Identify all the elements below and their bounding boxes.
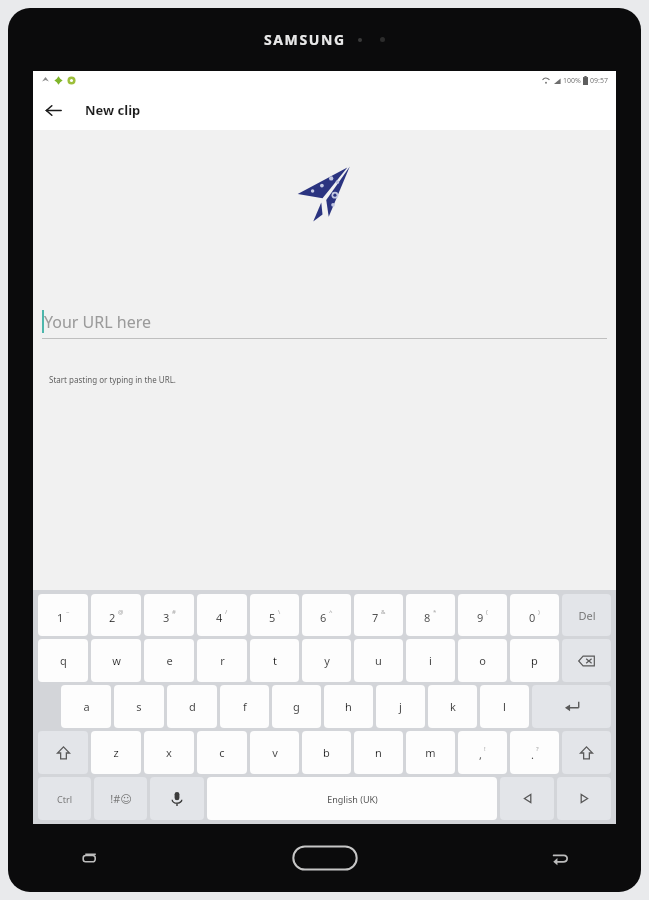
staticText: r [220,653,225,668]
button[interactable]: Recent apps [68,837,110,879]
staticText: ! [484,745,486,753]
button[interactable]: k [428,685,477,728]
button[interactable]: x [144,731,194,774]
button[interactable]: t [250,639,299,682]
staticText: ( [486,608,488,616]
button[interactable]: 5 [250,594,299,636]
button[interactable]: 9 [458,594,507,636]
staticText: # [172,608,176,616]
staticText: g [293,699,300,714]
staticText: w [112,653,121,668]
button[interactable]: . [510,731,559,774]
button[interactable]: 4 [197,594,247,636]
button[interactable]: a [61,685,111,728]
staticText: !#☺ [110,791,132,806]
staticText: l [503,699,506,714]
staticText: Start pasting or typing in the URL. [49,374,176,385]
staticText: English (UK) [327,793,378,805]
button[interactable]: 8 [406,594,455,636]
staticText: 4 [216,610,223,625]
button[interactable]: shift [562,731,611,774]
button[interactable]: l [480,685,529,728]
staticText: v [272,745,278,760]
button[interactable]: !#☺ [94,777,147,820]
button[interactable]: r [197,639,247,682]
button[interactable]: enter [532,685,611,728]
staticText: z [113,745,119,760]
button[interactable]: Home [289,841,361,875]
button[interactable]: h [324,685,373,728]
button[interactable]: 7 [354,594,403,636]
button[interactable]: n [354,731,403,774]
staticText: a [83,699,90,714]
staticText: ~ [66,608,70,616]
button[interactable]: q [38,639,88,682]
staticText: e [166,653,173,668]
button[interactable]: 3 [144,594,194,636]
staticText: 2 [109,610,116,625]
staticText: & [381,608,386,616]
button[interactable]: right [557,777,611,820]
button[interactable]: g [272,685,321,728]
button[interactable]: i [406,639,455,682]
button[interactable]: u [354,639,403,682]
button[interactable]: Back [33,90,73,130]
staticText: * [433,608,437,616]
staticText: 5 [269,610,276,625]
button[interactable]: f [220,685,269,728]
button[interactable]: j [376,685,425,728]
staticText: q [60,653,67,668]
staticText: 0 [529,610,536,625]
button[interactable]: 6 [302,594,351,636]
button[interactable]: 2 [91,594,141,636]
staticText: y [324,653,330,668]
button[interactable]: y [302,639,351,682]
staticText: / [225,608,228,616]
button[interactable]: , [458,731,507,774]
staticText: Del [578,608,596,623]
staticText: b [323,745,330,760]
button[interactable]: m [406,731,455,774]
staticText: Your URL here [44,311,152,333]
staticText: x [166,745,172,760]
staticText: 6 [320,610,327,625]
button[interactable]: 1 [38,594,88,636]
staticText: d [189,699,196,714]
staticText: 7 [372,610,379,625]
staticText: 09:57 [590,76,608,86]
staticText: 3 [163,610,170,625]
staticText: p [531,653,538,668]
staticText: c [219,745,225,760]
button[interactable]: z [91,731,141,774]
button[interactable]: w [91,639,141,682]
button[interactable]: v [250,731,299,774]
button[interactable]: e [144,639,194,682]
staticText: ) [538,608,540,616]
staticText: New clip [85,101,141,119]
button[interactable]: p [510,639,559,682]
button[interactable]: o [458,639,507,682]
button[interactable]: Back [539,837,581,879]
staticText: 9 [477,610,484,625]
staticText: k [450,699,456,714]
staticText: \ [278,608,281,616]
staticText: SAMSUNG [264,30,346,49]
staticText: s [136,699,142,714]
button[interactable]: Del [562,594,611,636]
staticText: . [531,747,534,762]
button[interactable]: s [114,685,164,728]
staticText: 100% [563,76,581,86]
button[interactable]: backspace [562,639,611,682]
staticText: i [429,653,432,668]
staticText: h [345,699,352,714]
button[interactable]: shift [38,731,88,774]
button[interactable]: left [500,777,554,820]
button[interactable]: d [167,685,217,728]
button[interactable]: c [197,731,247,774]
button[interactable]: 0 [510,594,559,636]
button[interactable]: English (UK) [207,777,497,820]
button[interactable]: Ctrl [38,777,91,820]
button[interactable]: b [302,731,351,774]
button[interactable]: mic [150,777,204,820]
button[interactable]: Your URL here [42,310,607,339]
